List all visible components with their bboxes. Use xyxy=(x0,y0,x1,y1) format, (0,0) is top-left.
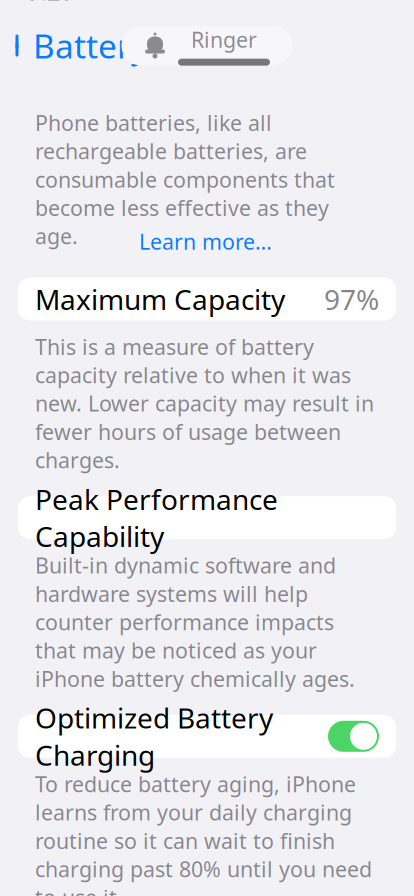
staticText: Maximum Capacity xyxy=(35,280,285,318)
staticText: This is a measure of battery capacity re… xyxy=(35,332,374,474)
staticText: To reduce battery aging, iPhone learns f… xyxy=(35,770,372,896)
button[interactable]: Optimized Battery Charging xyxy=(0,715,414,758)
staticText: Optimized Battery Charging xyxy=(35,699,273,773)
button[interactable]: Learn more… xyxy=(139,227,272,255)
staticText: 9:28 xyxy=(28,0,73,7)
staticText: 97% xyxy=(324,280,379,318)
staticText: Built-in dynamic software and hardware s… xyxy=(35,551,355,693)
button[interactable]: Battery xyxy=(0,17,148,74)
staticText: Battery xyxy=(33,23,148,68)
staticText: Learn more… xyxy=(139,227,272,255)
staticText: Ringer xyxy=(191,25,257,54)
staticText: Peak Performance Capability xyxy=(35,480,278,555)
staticText: Phone batteries, like all rechargeable b… xyxy=(35,108,335,250)
button[interactable]: Peak Performance Capability xyxy=(0,496,414,539)
